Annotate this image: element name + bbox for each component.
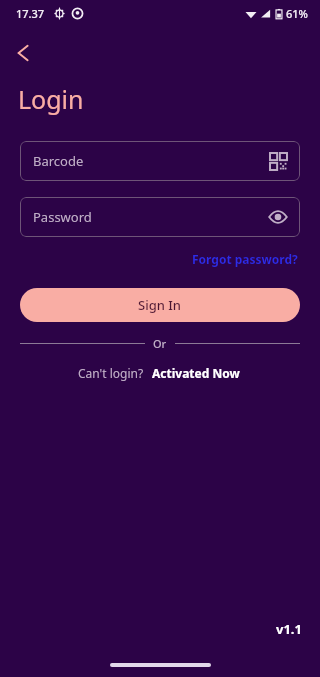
- staticText: Barcode: [33, 152, 84, 170]
- button[interactable]: Back: [6, 38, 36, 68]
- staticText: Activated Now: [152, 365, 240, 381]
- staticText: Can't login?: [78, 365, 144, 381]
- button[interactable]: Activated Now: [150, 363, 242, 383]
- staticText: 61%: [286, 6, 308, 21]
- staticText: Or: [153, 336, 167, 351]
- button[interactable]: Sign In: [20, 288, 300, 322]
- button[interactable]: Password: [20, 197, 300, 237]
- staticText: Password: [33, 208, 92, 226]
- staticText: Sign In: [138, 296, 182, 314]
- staticText: 17.37: [16, 6, 45, 21]
- staticText: Forgot password?: [192, 251, 298, 267]
- staticText: Login: [18, 82, 84, 116]
- button[interactable]: Forgot password?: [190, 249, 300, 269]
- staticText: v1.1: [276, 620, 302, 638]
- button[interactable]: Barcode: [20, 141, 300, 181]
- button[interactable]: Show password: [268, 207, 288, 227]
- button[interactable]: Scan barcode: [270, 153, 287, 170]
